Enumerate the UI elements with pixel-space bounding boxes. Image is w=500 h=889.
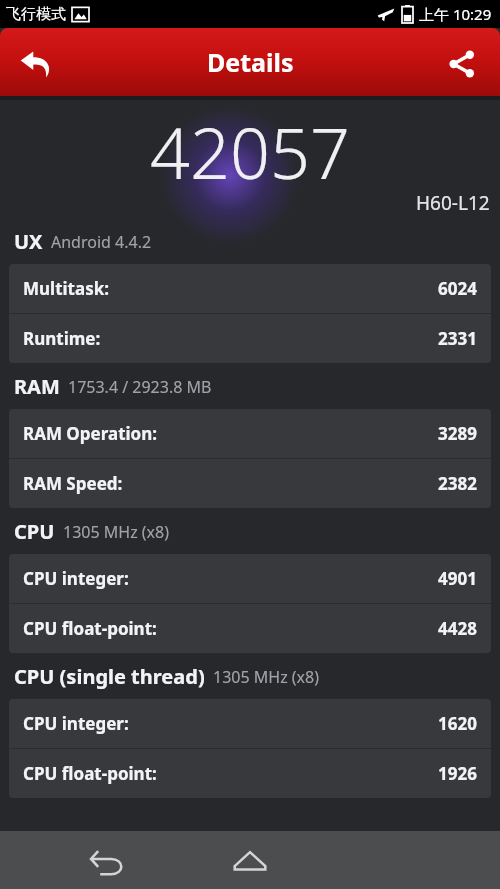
- staticText: 1305 MHz (x8): [63, 521, 170, 543]
- staticText: 42057: [150, 104, 350, 199]
- button[interactable]: CPU float-point:: [9, 604, 491, 653]
- staticText: H60-L12: [416, 190, 490, 216]
- staticText: CPU float-point:: [23, 617, 157, 640]
- button[interactable]: Runtime:: [9, 314, 491, 363]
- staticText: Runtime:: [23, 327, 101, 350]
- staticText: Details: [207, 45, 294, 79]
- button[interactable]: CPU float-point:: [9, 749, 491, 798]
- button[interactable]: CPU integer:: [9, 699, 491, 748]
- staticText: CPU: [14, 518, 55, 545]
- staticText: 2382: [438, 472, 477, 495]
- staticText: 4428: [438, 617, 477, 640]
- staticText: 飞行模式: [6, 5, 66, 24]
- staticText: 6024: [438, 277, 477, 300]
- button[interactable]: RAM Operation:: [9, 409, 491, 458]
- staticText: RAM Operation:: [23, 422, 158, 445]
- staticText: 1753.4 / 2923.8 MB: [68, 376, 212, 398]
- staticText: 4901: [438, 567, 477, 590]
- staticText: Android 4.4.2: [51, 231, 152, 253]
- staticText: 上午 10:29: [419, 4, 492, 24]
- staticText: RAM Speed:: [23, 472, 123, 495]
- button[interactable]: CPU integer:: [9, 554, 491, 603]
- staticText: 1620: [438, 712, 477, 735]
- staticText: 1926: [438, 762, 477, 785]
- button[interactable]: RAM Speed:: [9, 459, 491, 508]
- staticText: CPU (single thread): [14, 663, 205, 690]
- staticText: CPU integer:: [23, 567, 129, 590]
- button[interactable]: Home: [223, 833, 277, 887]
- staticText: CPU integer:: [23, 712, 129, 735]
- button[interactable]: Back: [80, 833, 134, 887]
- button[interactable]: Share: [434, 36, 490, 92]
- staticText: 2331: [438, 327, 477, 350]
- button[interactable]: Multitask:: [9, 264, 491, 313]
- staticText: 3289: [438, 422, 477, 445]
- staticText: CPU float-point:: [23, 762, 157, 785]
- staticText: RAM: [14, 373, 60, 400]
- staticText: Multitask:: [23, 277, 110, 300]
- staticText: UX: [14, 228, 43, 255]
- staticText: 1305 MHz (x8): [213, 666, 320, 688]
- button[interactable]: Back: [8, 36, 64, 92]
